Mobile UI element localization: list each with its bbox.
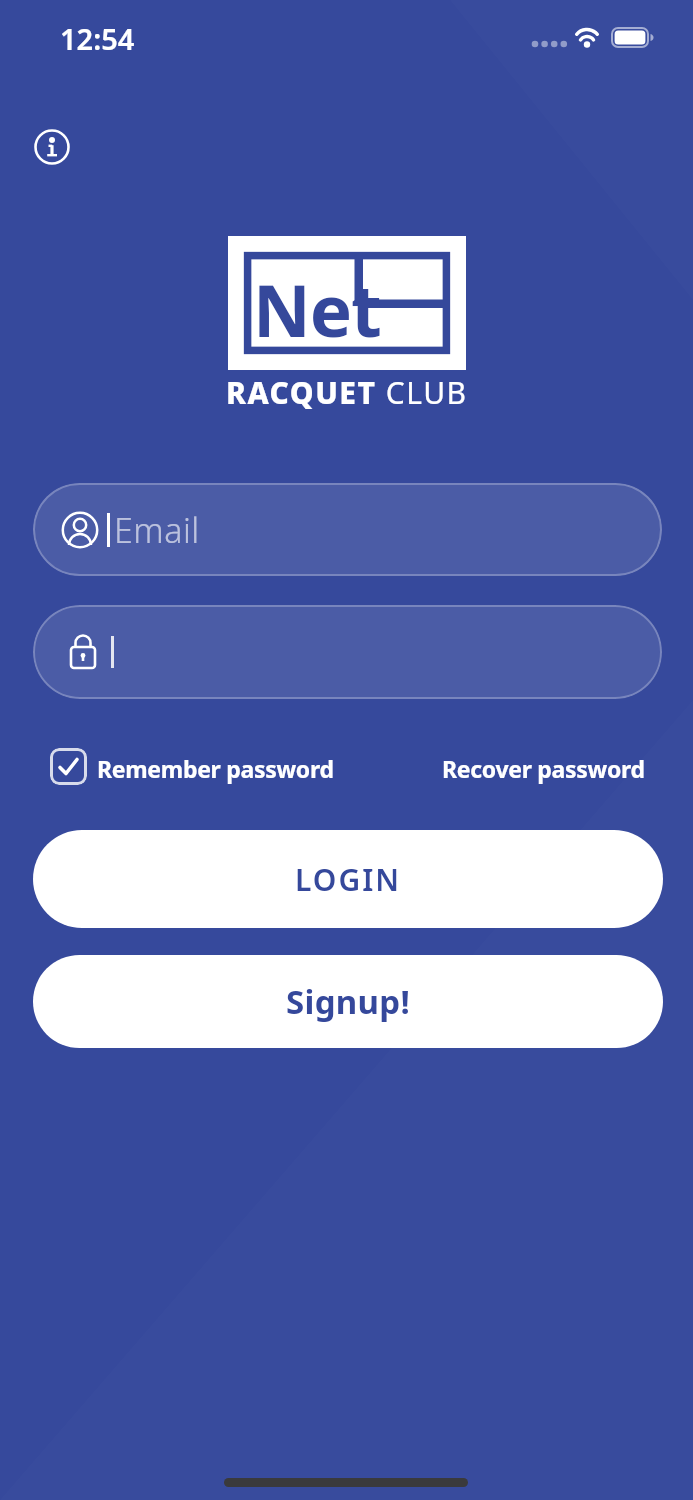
- staticText: Signup!: [286, 979, 411, 1024]
- staticText: RACQUET CLUB: [226, 372, 468, 413]
- button[interactable]: Recover password: [442, 753, 645, 784]
- button[interactable]: Email: [33, 483, 662, 576]
- button[interactable]: Signup!: [33, 955, 663, 1048]
- staticText: Net: [253, 261, 381, 358]
- button[interactable]: [33, 605, 662, 699]
- button[interactable]: LOGIN: [33, 830, 663, 928]
- button[interactable]: [32, 127, 72, 167]
- staticText: Remember password: [97, 753, 334, 784]
- button[interactable]: [50, 748, 87, 785]
- staticText: LOGIN: [295, 859, 402, 900]
- staticText: 12:54: [60, 19, 135, 58]
- staticText: Email: [114, 507, 200, 553]
